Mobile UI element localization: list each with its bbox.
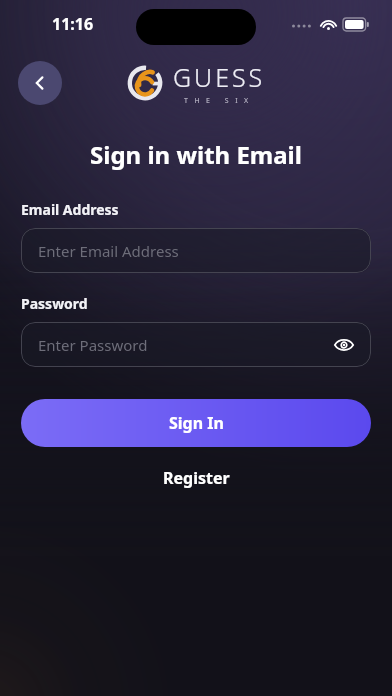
button[interactable]: Back (18, 61, 62, 105)
button[interactable]: Register (149, 461, 244, 495)
staticText: Enter Password (38, 335, 148, 355)
staticText: Enter Email Address (38, 241, 179, 261)
staticText: 11:16 (52, 13, 94, 35)
staticText: Sign In (169, 412, 224, 434)
button[interactable]: Enter Password (21, 322, 371, 367)
staticText: Password (21, 294, 88, 313)
button[interactable]: Sign In (21, 399, 371, 447)
button[interactable]: Enter Email Address (21, 228, 371, 273)
staticText: THE SIX (184, 96, 255, 106)
button[interactable]: Show password (329, 330, 359, 360)
staticText: Email Address (21, 200, 119, 219)
staticText: GUESS (173, 60, 266, 94)
staticText: Sign in with Email (90, 138, 302, 171)
staticText: Register (163, 467, 230, 489)
